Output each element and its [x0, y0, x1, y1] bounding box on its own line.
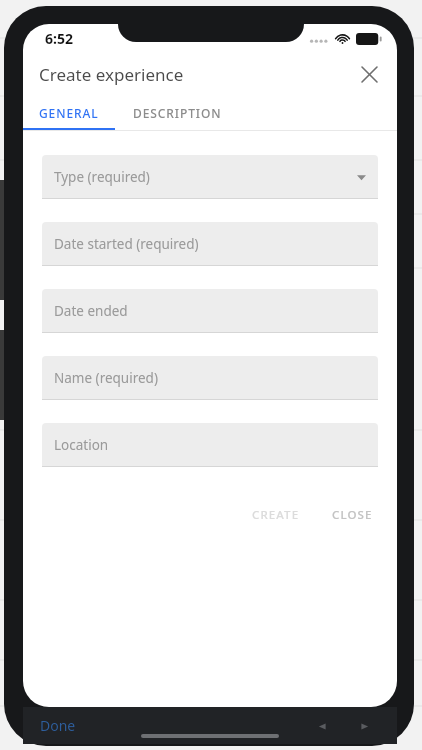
button[interactable]: Location — [42, 423, 378, 467]
staticText: 6:52 — [45, 29, 73, 48]
staticText: CREATE — [252, 507, 300, 523]
button[interactable]: Close — [349, 54, 389, 94]
button[interactable]: Previous — [309, 713, 335, 739]
button[interactable]: DESCRIPTION — [115, 96, 239, 130]
staticText: CLOSE — [332, 507, 373, 523]
button[interactable]: Done — [23, 712, 84, 739]
staticText: Create experience — [39, 63, 184, 86]
staticText: Date ended — [54, 302, 128, 320]
button[interactable]: Date ended — [42, 289, 378, 333]
button[interactable]: CREATE — [242, 499, 310, 531]
staticText: Location — [54, 436, 109, 454]
staticText: Type (required) — [54, 168, 150, 186]
button[interactable]: CLOSE — [322, 499, 383, 531]
button[interactable]: GENERAL — [23, 96, 115, 130]
staticText: DESCRIPTION — [133, 105, 222, 121]
button[interactable]: Name (required) — [42, 356, 378, 400]
staticText: GENERAL — [39, 105, 99, 121]
staticText: Date started (required) — [54, 235, 199, 253]
button[interactable]: Date started (required) — [42, 222, 378, 266]
button[interactable]: Next — [351, 713, 377, 739]
button[interactable]: Type (required) — [42, 155, 378, 199]
staticText: Name (required) — [54, 369, 158, 387]
